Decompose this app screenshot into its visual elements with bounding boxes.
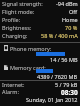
- staticText: Home: [62, 16, 78, 23]
- staticText: 14 / 56 MB: [50, 56, 78, 63]
- staticText: Off: [69, 8, 78, 15]
- button[interactable]: Brightness:: [0, 24, 80, 32]
- staticText: Phone memory:: [10, 45, 52, 52]
- staticText: Brightness:: [2, 24, 32, 31]
- staticText: 4389 / 7620 MB: [37, 73, 78, 80]
- staticText: 08:30: [61, 88, 78, 96]
- staticText: -94 dBm: [56, 0, 78, 7]
- staticText: Signal strength:: [2, 0, 43, 7]
- staticText: Alarm:: [2, 88, 19, 95]
- button[interactable]: Memory card:: [0, 0, 80, 7]
- button[interactable]: Charging:: [0, 32, 80, 40]
- button[interactable]: Internet:: [0, 81, 80, 89]
- staticText: Charging:: [2, 32, 28, 39]
- button[interactable]: Flight mode:: [0, 8, 80, 16]
- staticText: 58 % / 400 mA: [41, 32, 78, 39]
- staticText: 5 / 79 kB: [55, 81, 78, 88]
- staticText: Internet:: [2, 81, 25, 88]
- staticText: Sunday, 01 Jan 2012: [26, 96, 78, 103]
- button[interactable]: Signal strength:: [0, 0, 80, 8]
- button[interactable]: Profile:: [0, 16, 80, 24]
- button[interactable]: Alarm:: [0, 88, 80, 96]
- button[interactable]: Phone memory:: [0, 0, 80, 7]
- staticText: Flight mode:: [2, 8, 35, 15]
- staticText: Memory card:: [10, 64, 46, 71]
- staticText: Profile:: [2, 16, 21, 23]
- staticText: 70 %: [65, 24, 78, 31]
